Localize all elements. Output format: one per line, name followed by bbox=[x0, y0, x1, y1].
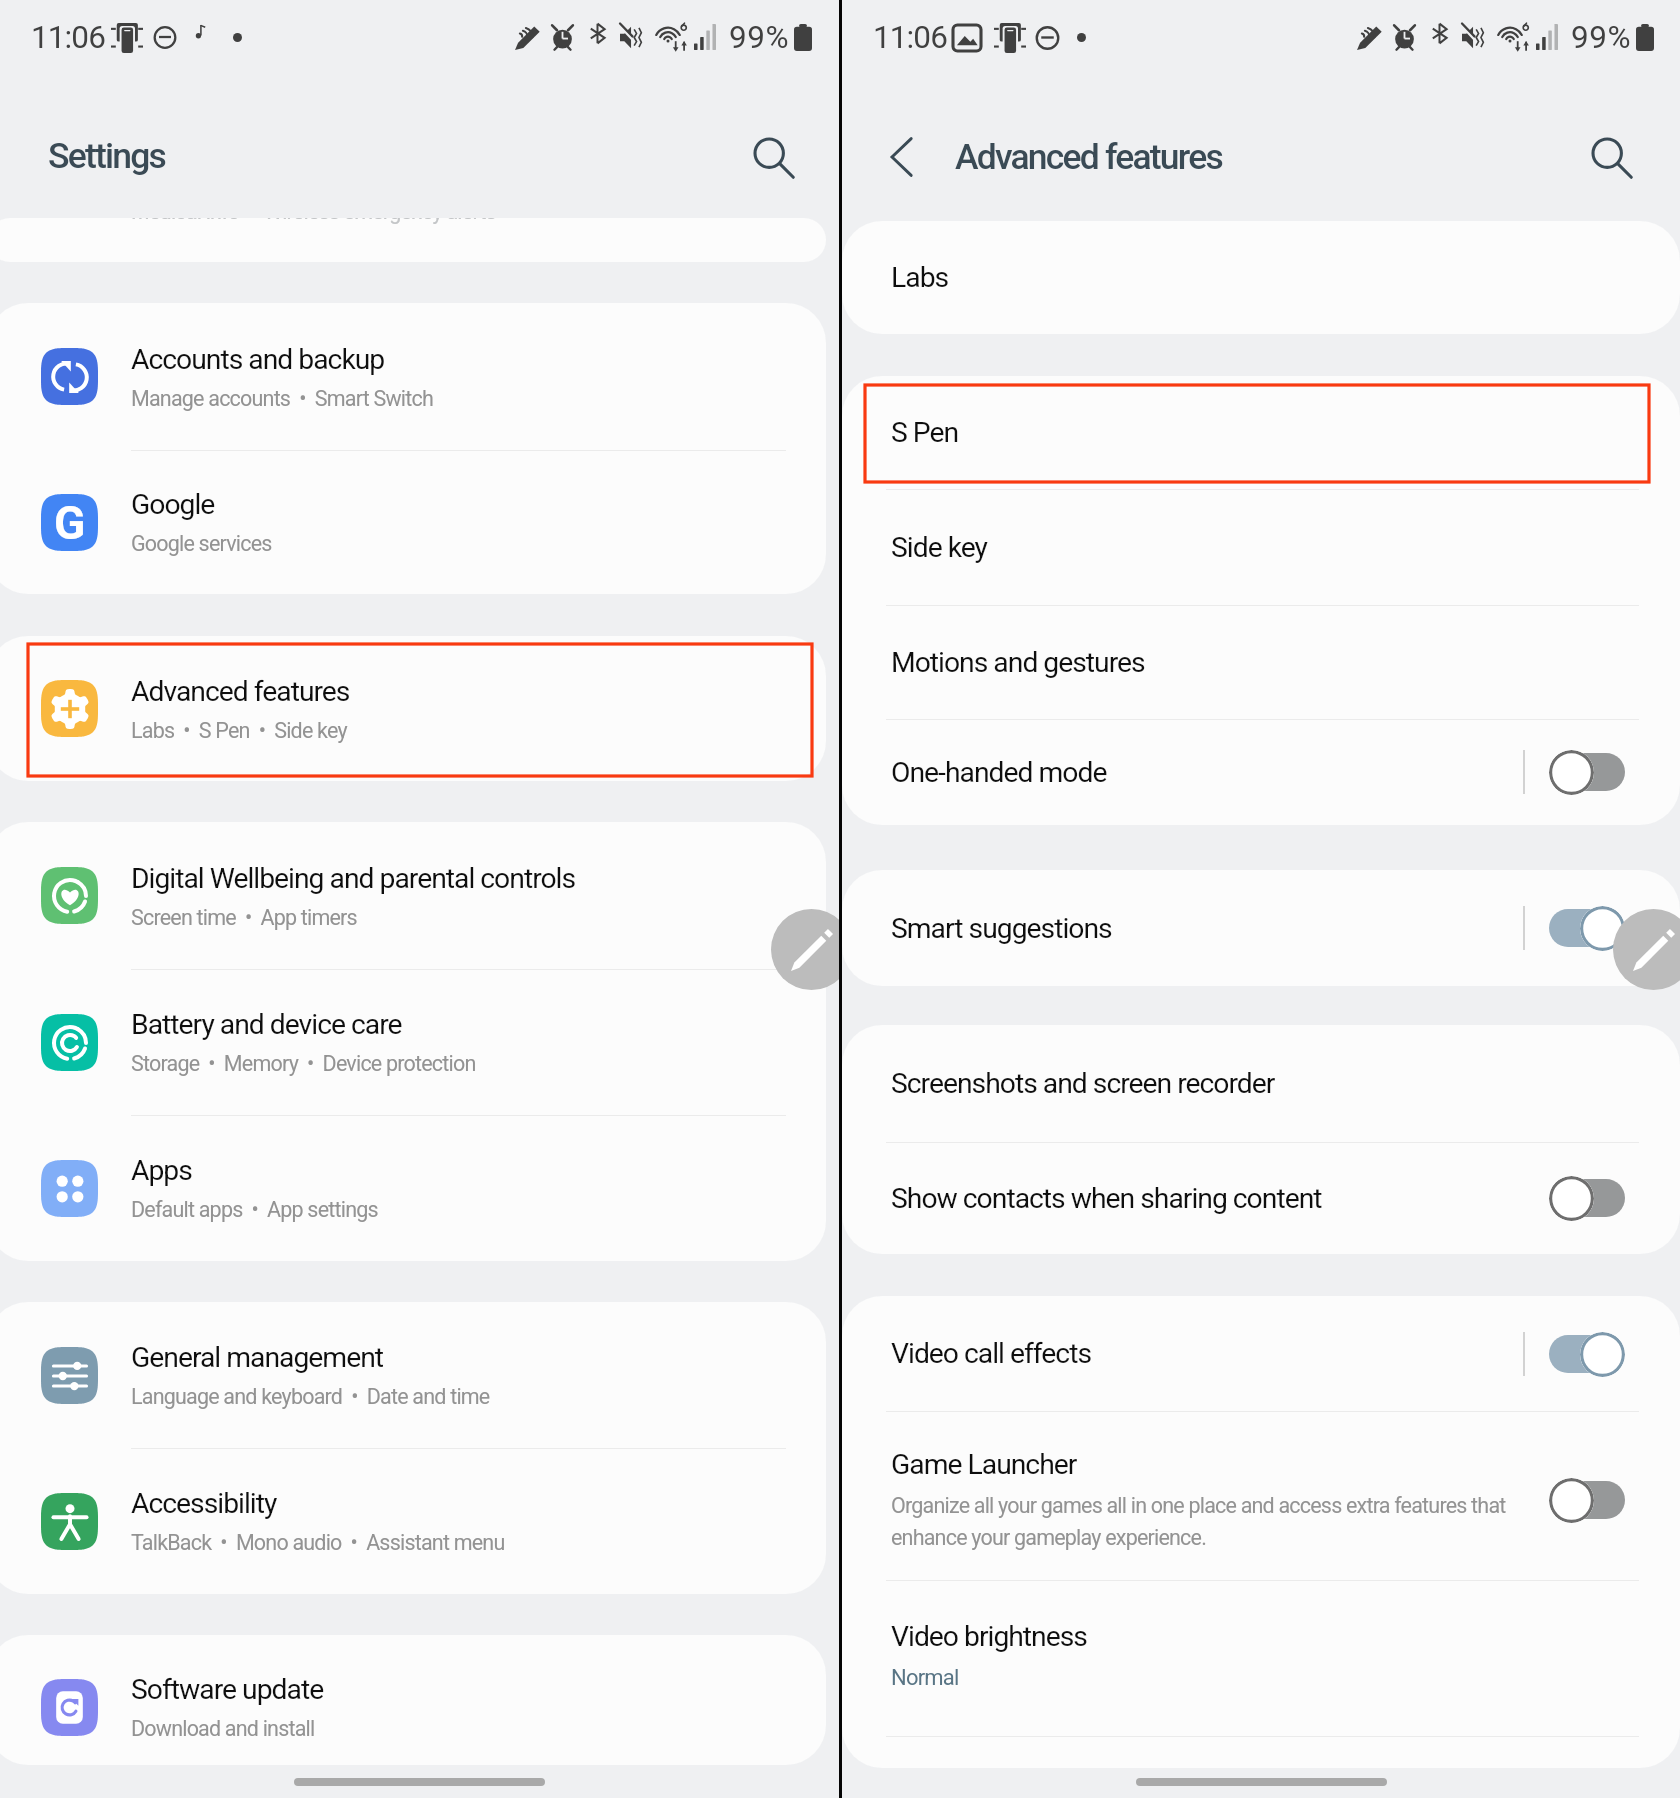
button[interactable]: Toggle off bbox=[1549, 749, 1625, 795]
staticText: Motions and gestures bbox=[891, 646, 1145, 679]
button[interactable]: Game Launcher bbox=[842, 1415, 1680, 1584]
staticText: Medical info • Wireless emergency alerts bbox=[131, 218, 496, 224]
button[interactable]: Accessibility bbox=[0, 1448, 826, 1594]
button[interactable]: Toggle off bbox=[1549, 1477, 1625, 1523]
staticText: Digital Wellbeing and parental controls bbox=[131, 862, 576, 895]
staticText: TalkBack • Mono audio • Assistant menu bbox=[131, 1530, 505, 1555]
button[interactable]: Digital Wellbeing and parental controls bbox=[0, 822, 826, 969]
button[interactable]: Battery and device care bbox=[0, 969, 826, 1115]
staticText: Smart suggestions bbox=[891, 912, 1523, 945]
button[interactable]: General management bbox=[0, 1302, 826, 1448]
staticText: Manage accounts • Smart Switch bbox=[131, 386, 433, 411]
button[interactable]: Screenshots and screen recorder bbox=[842, 1025, 1680, 1142]
staticText: Screen time • App timers bbox=[131, 905, 357, 930]
button[interactable]: Edit bbox=[771, 909, 852, 990]
staticText: Game Launcher bbox=[891, 1448, 1077, 1481]
button[interactable]: One-handed mode bbox=[842, 719, 1680, 825]
button[interactable]: Smart suggestions bbox=[842, 870, 1680, 986]
button[interactable]: Accounts and backup bbox=[0, 303, 826, 450]
staticText: Software update bbox=[131, 1673, 324, 1706]
button[interactable]: Software update bbox=[0, 1642, 826, 1765]
staticText: Battery and device care bbox=[131, 1008, 402, 1041]
button[interactable]: Search bbox=[742, 126, 804, 188]
button[interactable]: G bbox=[0, 450, 826, 594]
staticText: Normal bbox=[891, 1665, 959, 1691]
staticText: Organize all your games all in one place… bbox=[891, 1493, 1509, 1551]
staticText: Labs • S Pen • Side key bbox=[131, 718, 347, 743]
staticText: 11:06 bbox=[31, 19, 105, 56]
button[interactable]: Toggle on bbox=[1549, 905, 1625, 951]
staticText: Advanced features bbox=[131, 675, 350, 708]
button[interactable]: Toggle off bbox=[1549, 1175, 1625, 1221]
staticText: Apps bbox=[131, 1154, 192, 1187]
staticText: Accounts and backup bbox=[131, 343, 385, 376]
staticText: Download and install bbox=[131, 1716, 315, 1741]
button[interactable]: Toggle on bbox=[1549, 1331, 1625, 1377]
button[interactable]: Motions and gestures bbox=[842, 605, 1680, 719]
staticText: Accessibility bbox=[131, 1487, 277, 1520]
staticText: Default apps • App settings bbox=[131, 1197, 378, 1222]
button[interactable]: Edit bbox=[1613, 909, 1680, 990]
staticText: 11:06 bbox=[873, 19, 947, 56]
button[interactable]: Apps bbox=[0, 1115, 826, 1261]
button[interactable]: Advanced features bbox=[0, 636, 826, 781]
staticText: G bbox=[54, 496, 86, 550]
staticText: Storage • Memory • Device protection bbox=[131, 1051, 476, 1076]
staticText: General management bbox=[131, 1341, 384, 1374]
button[interactable]: Labs bbox=[842, 221, 1680, 334]
staticText: Google bbox=[131, 488, 215, 521]
staticText: Advanced features bbox=[955, 136, 1222, 178]
staticText: S Pen bbox=[891, 416, 959, 449]
staticText: Labs bbox=[891, 261, 949, 294]
staticText: Screenshots and screen recorder bbox=[891, 1067, 1275, 1100]
button[interactable]: Video call effects bbox=[842, 1296, 1680, 1411]
button[interactable]: Search bbox=[1580, 126, 1642, 188]
staticText: Video call effects bbox=[891, 1337, 1523, 1370]
button[interactable]: S Pen bbox=[842, 376, 1680, 489]
staticText: Show contacts when sharing content bbox=[891, 1182, 1549, 1215]
staticText: Language and keyboard • Date and time bbox=[131, 1384, 490, 1409]
staticText: One-handed mode bbox=[891, 756, 1523, 789]
button[interactable]: Video brightness bbox=[842, 1577, 1680, 1733]
button[interactable]: Side key bbox=[842, 489, 1680, 605]
staticText: 99% bbox=[1571, 19, 1632, 56]
staticText: 99% bbox=[729, 19, 790, 56]
staticText: Side key bbox=[891, 531, 987, 564]
staticText: Google services bbox=[131, 531, 272, 556]
staticText: Video brightness bbox=[891, 1620, 1087, 1653]
button[interactable]: Back bbox=[873, 126, 935, 188]
button[interactable]: Show contacts when sharing content bbox=[842, 1142, 1680, 1254]
staticText: Settings bbox=[48, 135, 165, 177]
